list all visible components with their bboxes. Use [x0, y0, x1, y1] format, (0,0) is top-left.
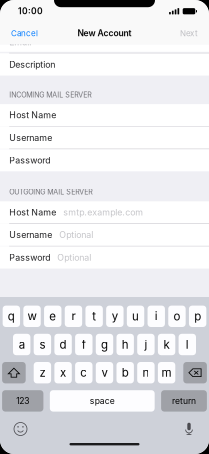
button[interactable]: u	[127, 306, 144, 327]
button[interactable]: b	[116, 362, 134, 383]
staticText: m	[162, 366, 172, 380]
staticText: x	[60, 366, 66, 380]
staticText: f	[82, 338, 86, 351]
staticText: i	[155, 309, 158, 323]
button[interactable]: j	[137, 334, 155, 355]
button[interactable]: s	[34, 334, 51, 355]
staticText: v	[101, 366, 107, 380]
button[interactable]: Username	[0, 127, 209, 149]
button[interactable]: f	[75, 334, 92, 355]
button[interactable]: Dictate	[184, 422, 194, 436]
button[interactable]: Cancel	[0, 22, 49, 44]
staticText: l	[186, 338, 189, 351]
button[interactable]: e	[44, 306, 61, 327]
staticText: 123	[16, 396, 29, 406]
button[interactable]: g	[96, 334, 113, 355]
button[interactable]: o	[168, 306, 186, 327]
staticText: z	[39, 366, 45, 380]
button[interactable]: Emoji	[14, 422, 27, 435]
staticText: c	[80, 366, 87, 380]
staticText: return	[172, 396, 196, 406]
staticText: e	[49, 309, 56, 323]
staticText: q	[8, 309, 15, 323]
button[interactable]: Password	[0, 246, 209, 268]
button[interactable]: Host Name	[0, 104, 209, 126]
button[interactable]: z	[34, 362, 51, 383]
staticText: h	[122, 338, 129, 351]
button[interactable]: t	[85, 306, 103, 327]
staticText: Email	[9, 37, 31, 47]
staticText: Username	[9, 230, 52, 240]
staticText: Cancel	[11, 28, 38, 38]
button[interactable]: w	[23, 306, 41, 327]
staticText: space	[90, 396, 115, 406]
button[interactable]: Password	[0, 149, 209, 171]
staticText: s	[39, 338, 45, 351]
button[interactable]: i	[147, 306, 165, 327]
staticText: g	[101, 338, 108, 351]
button[interactable]: Username	[0, 224, 209, 246]
staticText: o	[173, 309, 180, 323]
staticText: d	[60, 338, 67, 351]
staticText: r	[71, 309, 75, 323]
button[interactable]: Delete	[183, 362, 207, 383]
button[interactable]: Shift	[2, 362, 26, 383]
button[interactable]: return	[161, 390, 207, 412]
button[interactable]: a	[13, 334, 30, 355]
button[interactable]: x	[54, 362, 72, 383]
button[interactable]: v	[96, 362, 113, 383]
button[interactable]: Description	[0, 53, 209, 75]
button[interactable]: c	[75, 362, 92, 383]
staticText: k	[164, 338, 170, 351]
button[interactable]: n	[137, 362, 155, 383]
staticText: Host Name	[9, 207, 56, 218]
staticText: New Account	[77, 28, 131, 38]
staticText: Password	[9, 155, 50, 166]
staticText: y	[112, 309, 118, 323]
staticText: Optional	[57, 252, 91, 263]
staticText: OUTGOING MAIL SERVER	[9, 188, 93, 196]
staticText: Description	[9, 59, 55, 70]
staticText: INCOMING MAIL SERVER	[9, 91, 92, 99]
staticText: Password	[9, 252, 50, 263]
button[interactable]: q	[3, 306, 20, 327]
staticText: a	[19, 338, 25, 351]
button[interactable]: Host Name	[0, 201, 209, 223]
staticText: smtp.example.com	[63, 207, 143, 218]
staticText: Optional	[59, 230, 93, 240]
staticText: Host Name	[9, 110, 56, 120]
button[interactable]: r	[65, 306, 82, 327]
staticText: u	[132, 309, 139, 323]
button[interactable]: l	[179, 334, 196, 355]
button[interactable]: y	[106, 306, 123, 327]
button[interactable]: Next	[169, 22, 209, 44]
staticText: t	[92, 309, 96, 323]
staticText: p	[194, 309, 201, 323]
staticText: Next	[180, 28, 198, 38]
button[interactable]: h	[116, 334, 134, 355]
staticText: 10:00	[18, 6, 43, 16]
button[interactable]: d	[54, 334, 72, 355]
button[interactable]: k	[158, 334, 175, 355]
staticText: w	[27, 309, 36, 323]
button[interactable]: m	[158, 362, 175, 383]
button[interactable]: 123	[2, 390, 43, 412]
staticText: Username	[9, 132, 52, 143]
button[interactable]: space	[50, 390, 155, 412]
button[interactable]: p	[189, 306, 206, 327]
staticText: b	[122, 366, 129, 380]
staticText: n	[142, 366, 149, 380]
staticText: j	[144, 338, 147, 351]
